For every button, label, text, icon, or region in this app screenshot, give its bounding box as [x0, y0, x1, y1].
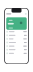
- button[interactable]: [6, 34, 27, 37]
- button[interactable]: [6, 48, 27, 51]
- button[interactable]: [6, 45, 27, 47]
- button[interactable]: [6, 41, 27, 44]
- button[interactable]: [6, 30, 27, 33]
- button[interactable]: [6, 17, 27, 30]
- button[interactable]: [6, 52, 27, 55]
- button[interactable]: [6, 38, 27, 40]
